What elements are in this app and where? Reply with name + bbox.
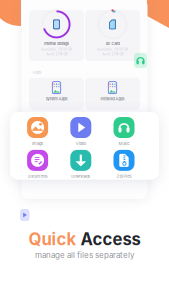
staticText: Quick — [28, 229, 80, 249]
staticText: System Apps — [45, 97, 67, 101]
staticText: manage all files separately — [35, 250, 134, 260]
staticText: Used: 27.18 GB — [101, 52, 123, 56]
staticText: Apps — [32, 70, 41, 75]
staticText: Available: 28.56 GB — [41, 47, 72, 51]
staticText: Downloads — [71, 174, 90, 179]
staticText: Zip Files — [116, 174, 131, 179]
button[interactable]: Installed Apps — [85, 78, 140, 110]
staticText: Image — [32, 141, 43, 146]
staticText: Access — [80, 229, 140, 249]
button[interactable]: Zip Files — [102, 150, 146, 179]
staticText: Video — [76, 141, 86, 146]
button[interactable]: Image — [16, 117, 59, 146]
button[interactable]: SD Card — [85, 10, 140, 61]
staticText: Used: 27.18 GB — [45, 52, 67, 56]
button[interactable]: System Apps — [29, 78, 84, 110]
staticText: Music — [118, 141, 129, 146]
button[interactable]: Documents — [16, 150, 59, 179]
button[interactable]: Music — [102, 117, 146, 146]
button[interactable]: Downloads — [59, 150, 102, 179]
button[interactable]: Video — [59, 117, 102, 146]
staticText: Installed Apps — [100, 97, 124, 101]
staticText: Internal Storage — [44, 41, 69, 46]
button[interactable]: Internal Storage — [29, 10, 84, 61]
staticText: SD Card — [105, 41, 119, 46]
staticText: Available: 28.56 GB — [97, 47, 128, 51]
staticText: Documents — [28, 174, 48, 179]
